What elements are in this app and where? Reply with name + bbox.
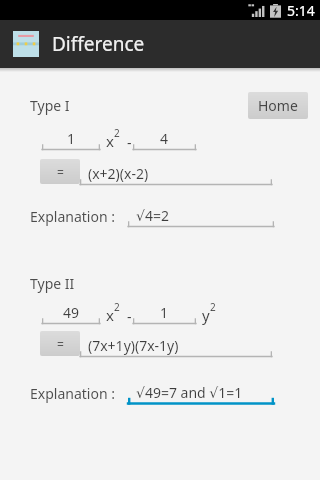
- staticText: Home: [258, 96, 298, 115]
- staticText: 2: [114, 126, 120, 140]
- button[interactable]: (7x+1y)(7x-1y): [80, 335, 272, 360]
- button[interactable]: 4: [133, 128, 196, 153]
- staticText: y: [202, 305, 210, 325]
- staticText: -: [127, 307, 132, 326]
- staticText: x: [106, 305, 114, 325]
- staticText: Type I: [30, 96, 70, 115]
- staticText: Explanation :: [30, 207, 115, 226]
- staticText: 5:14: [287, 1, 315, 20]
- staticText: √49=7 and √1=1: [136, 383, 243, 402]
- staticText: x: [106, 131, 114, 151]
- button[interactable]: Home: [248, 92, 308, 119]
- staticText: (7x+1y)(7x-1y): [88, 336, 179, 355]
- staticText: 1: [160, 303, 169, 322]
- staticText: 49: [63, 303, 80, 322]
- staticText: 2: [114, 300, 120, 314]
- staticText: √4=2: [136, 206, 169, 225]
- staticText: Difference: [52, 31, 145, 57]
- button[interactable]: 1: [42, 128, 100, 153]
- button[interactable]: 1: [133, 302, 196, 327]
- staticText: (x+2)(x-2): [88, 164, 149, 183]
- staticText: 2: [210, 300, 216, 314]
- staticText: Explanation :: [30, 384, 115, 403]
- staticText: =: [57, 164, 64, 180]
- other: App icon: [13, 31, 39, 57]
- staticText: 1: [67, 129, 76, 148]
- staticText: -: [127, 133, 132, 152]
- button[interactable]: √49=7 and √1=1: [128, 382, 274, 407]
- button[interactable]: (x+2)(x-2): [80, 163, 272, 188]
- staticText: =: [57, 336, 64, 352]
- button[interactable]: Equals: [40, 331, 80, 356]
- button[interactable]: 49: [42, 302, 100, 327]
- staticText: Type II: [30, 274, 75, 293]
- button[interactable]: √4=2: [128, 205, 274, 230]
- staticText: 4: [160, 129, 169, 148]
- button[interactable]: Equals: [40, 159, 80, 184]
